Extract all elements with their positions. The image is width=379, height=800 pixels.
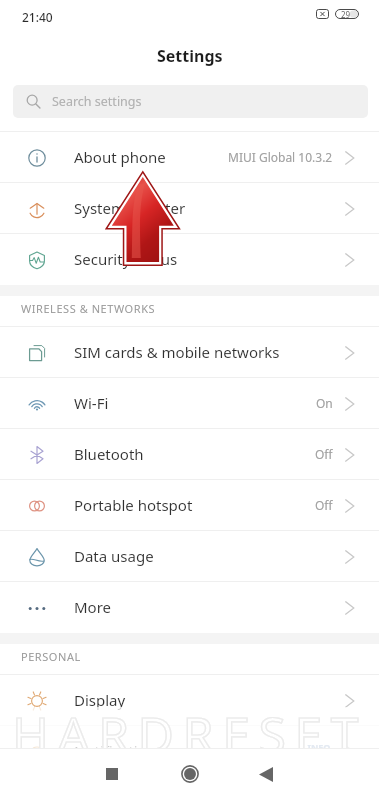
button[interactable]: Bluetooth	[0, 429, 379, 480]
staticText: Bluetooth	[74, 444, 144, 464]
staticText: Data usage	[74, 546, 154, 566]
staticText: On	[316, 395, 333, 411]
staticText: Off	[315, 497, 333, 513]
staticText: Settings	[157, 45, 223, 67]
button[interactable]: Recent apps	[73, 748, 151, 800]
staticText: System updater	[74, 198, 186, 218]
staticText: Security status	[74, 249, 178, 269]
button[interactable]: Portable hotspot	[0, 480, 379, 531]
staticText: WIRELESS & NETWORKS	[21, 301, 156, 316]
staticText: SIM cards & mobile networks	[74, 342, 280, 362]
button[interactable]: SIM cards & mobile networks	[0, 327, 379, 378]
staticText: Notifications	[74, 741, 164, 761]
staticText: Wi-Fi	[74, 393, 109, 413]
button[interactable]: System updater	[0, 183, 379, 234]
button[interactable]: Notifications	[0, 726, 379, 777]
staticText: Search settings	[52, 93, 142, 110]
staticText: Off	[315, 446, 333, 462]
button[interactable]: Home	[151, 748, 229, 800]
staticText: More	[74, 597, 112, 617]
staticText: Portable hotspot	[74, 495, 193, 515]
button[interactable]: Wi-Fi	[0, 378, 379, 429]
button[interactable]: Security status	[0, 234, 379, 285]
staticText: About phone	[74, 147, 166, 167]
button[interactable]: Search settings	[13, 85, 368, 118]
button[interactable]: More	[0, 582, 379, 633]
button[interactable]: Display	[0, 675, 379, 726]
staticText: MIUI Global 10.3.2	[228, 149, 333, 165]
staticText: 29	[341, 9, 351, 19]
button[interactable]: About phone	[0, 132, 379, 183]
staticText: Display	[74, 690, 126, 710]
staticText: 21:40	[22, 9, 53, 25]
button[interactable]: Back	[229, 748, 307, 800]
button[interactable]: Data usage	[0, 531, 379, 582]
staticText: PERSONAL	[21, 649, 81, 664]
